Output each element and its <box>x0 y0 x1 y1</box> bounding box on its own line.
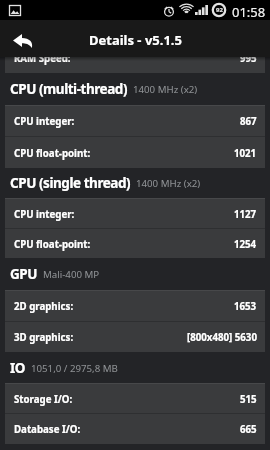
staticText: [800x480] 5630 <box>187 331 257 344</box>
staticText: 1051,0 / 2975,8 MB <box>31 362 118 375</box>
staticText: Storage I/O: <box>14 393 73 406</box>
button[interactable]: CPU float-point: <box>5 136 265 168</box>
staticText: CPU (multi-thread) <box>10 80 128 98</box>
staticText: 1653 <box>234 300 257 313</box>
staticText: 665 <box>240 423 257 436</box>
button[interactable]: RAM Speed: <box>5 42 265 73</box>
staticText: 01:58 <box>232 3 266 21</box>
staticText: 2D graphics: <box>14 300 74 313</box>
staticText: CPU integer: <box>14 115 75 128</box>
staticText: CPU integer: <box>14 208 75 221</box>
staticText: 995 <box>240 52 257 65</box>
button[interactable]: Back <box>0 21 45 56</box>
button[interactable]: CPU integer: <box>5 198 265 228</box>
button[interactable]: 3D graphics: <box>5 321 265 352</box>
staticText: 92 <box>216 6 223 14</box>
staticText: Database I/O: <box>14 423 81 436</box>
staticText: CPU (single thread) <box>10 174 131 192</box>
staticText: GPU <box>10 265 38 283</box>
staticText: 3D graphics: <box>14 331 74 344</box>
button[interactable]: CPU integer: <box>5 105 265 136</box>
staticText: 1400 MHz (x2) <box>133 83 198 96</box>
staticText: 1021 <box>234 147 257 160</box>
staticText: CPU float-point: <box>14 238 91 251</box>
staticText: IO <box>10 359 26 377</box>
staticText: 1400 MHz (x2) <box>136 177 201 190</box>
staticText: 867 <box>240 115 257 128</box>
staticText: Mali-400 MP <box>43 268 100 281</box>
staticText: RAM Speed: <box>14 52 71 65</box>
staticText: Details - v5.1.5 <box>89 31 182 49</box>
staticText: 1254 <box>234 238 257 251</box>
button[interactable]: Database I/O: <box>5 413 265 444</box>
button[interactable]: 2D graphics: <box>5 290 265 321</box>
button[interactable]: Storage I/O: <box>5 383 265 413</box>
staticText: 1127 <box>234 208 257 221</box>
button[interactable]: CPU float-point: <box>5 228 265 258</box>
staticText: CPU float-point: <box>14 147 91 160</box>
staticText: 515 <box>240 393 257 406</box>
